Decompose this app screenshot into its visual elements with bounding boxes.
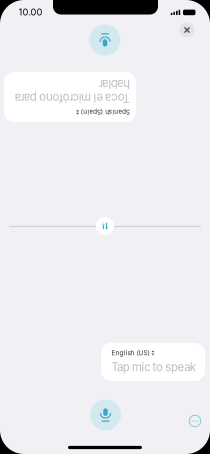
staticText: 10.00 <box>18 6 42 18</box>
button[interactable]: Spanish (Spain) <box>4 72 136 122</box>
button[interactable]: Microphone <box>90 399 121 430</box>
staticText: English (US) <box>111 349 149 357</box>
button[interactable]: Close <box>179 22 194 37</box>
button[interactable]: Microphone <box>89 24 120 55</box>
button[interactable]: Swap languages <box>96 217 114 235</box>
button[interactable]: More options <box>189 415 201 427</box>
staticText: Tap mic to speak <box>111 360 196 374</box>
staticText: Toca el micrófono para hablar <box>10 89 125 117</box>
button[interactable]: English (US) <box>101 343 205 381</box>
